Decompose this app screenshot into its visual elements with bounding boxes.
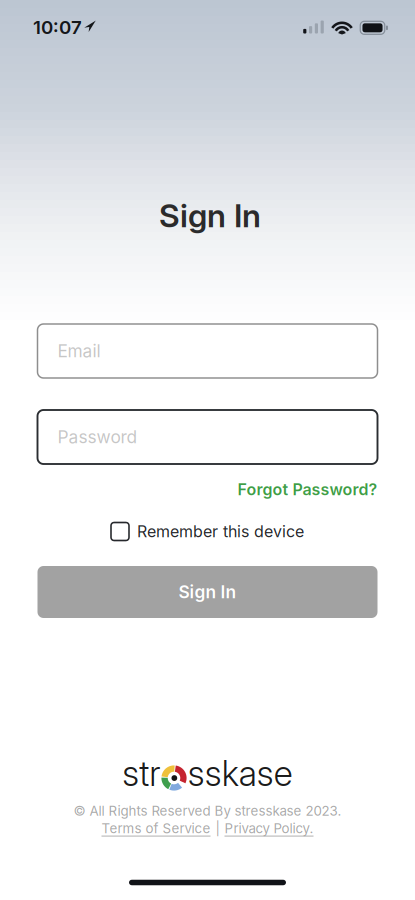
staticText: Forgot Password? <box>237 480 377 499</box>
staticText: str <box>122 752 160 794</box>
button[interactable]: Remember this device <box>111 522 304 541</box>
button[interactable]: Email <box>37 324 377 378</box>
staticText: © All Rights Reserved By stresskase 2023… <box>73 803 341 819</box>
staticText: Sign In <box>159 197 261 234</box>
button[interactable]: Sign In <box>37 566 377 618</box>
staticText: Privacy Policy. <box>224 821 313 836</box>
staticText: Sign In <box>178 582 236 602</box>
staticText: | <box>215 821 219 836</box>
button[interactable]: Forgot Password? <box>237 480 377 499</box>
button[interactable]: Password <box>37 410 377 464</box>
staticText: Remember this device <box>137 522 304 541</box>
staticText: Password <box>57 427 137 447</box>
staticText: 10:07 <box>33 16 82 38</box>
staticText: sskase <box>188 752 293 794</box>
staticText: Email <box>57 341 100 361</box>
button[interactable]: Privacy Policy. <box>224 821 313 836</box>
button[interactable]: Terms of Service <box>101 821 210 836</box>
staticText: Terms of Service <box>101 821 210 836</box>
